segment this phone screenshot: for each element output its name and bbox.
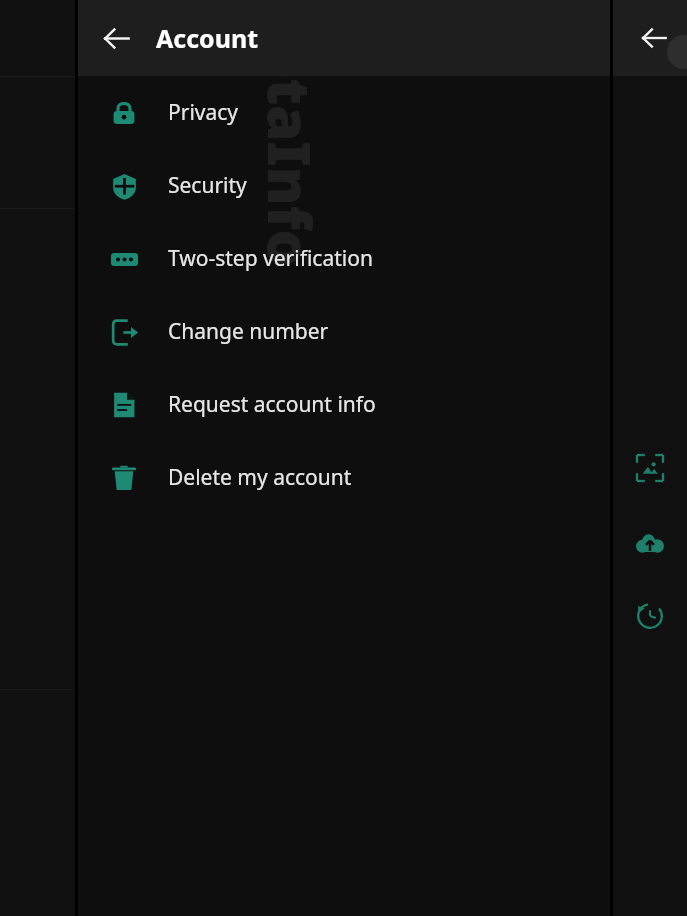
- staticText: Two-step verification: [168, 244, 373, 273]
- staticText: Delete my account: [168, 463, 352, 492]
- staticText: Request account info: [168, 390, 376, 419]
- staticText: @WABetaInfo: [250, 0, 329, 267]
- button[interactable]: Back: [634, 18, 674, 58]
- staticText: Privacy: [168, 98, 239, 127]
- button[interactable]: Privacy: [78, 76, 612, 149]
- button[interactable]: Request account info: [78, 368, 612, 441]
- button[interactable]: Back: [94, 16, 138, 60]
- button[interactable]: Delete my account: [78, 441, 612, 514]
- button[interactable]: Change number: [78, 295, 612, 368]
- staticText: Security: [168, 171, 247, 200]
- button[interactable]: Backup: [622, 514, 678, 570]
- button[interactable]: Media: [622, 440, 678, 496]
- staticText: Change number: [168, 317, 329, 346]
- button[interactable]: Two-step verification: [78, 222, 612, 295]
- staticText: Account: [156, 21, 259, 55]
- button[interactable]: Security: [78, 149, 612, 222]
- button[interactable]: History: [622, 588, 678, 644]
